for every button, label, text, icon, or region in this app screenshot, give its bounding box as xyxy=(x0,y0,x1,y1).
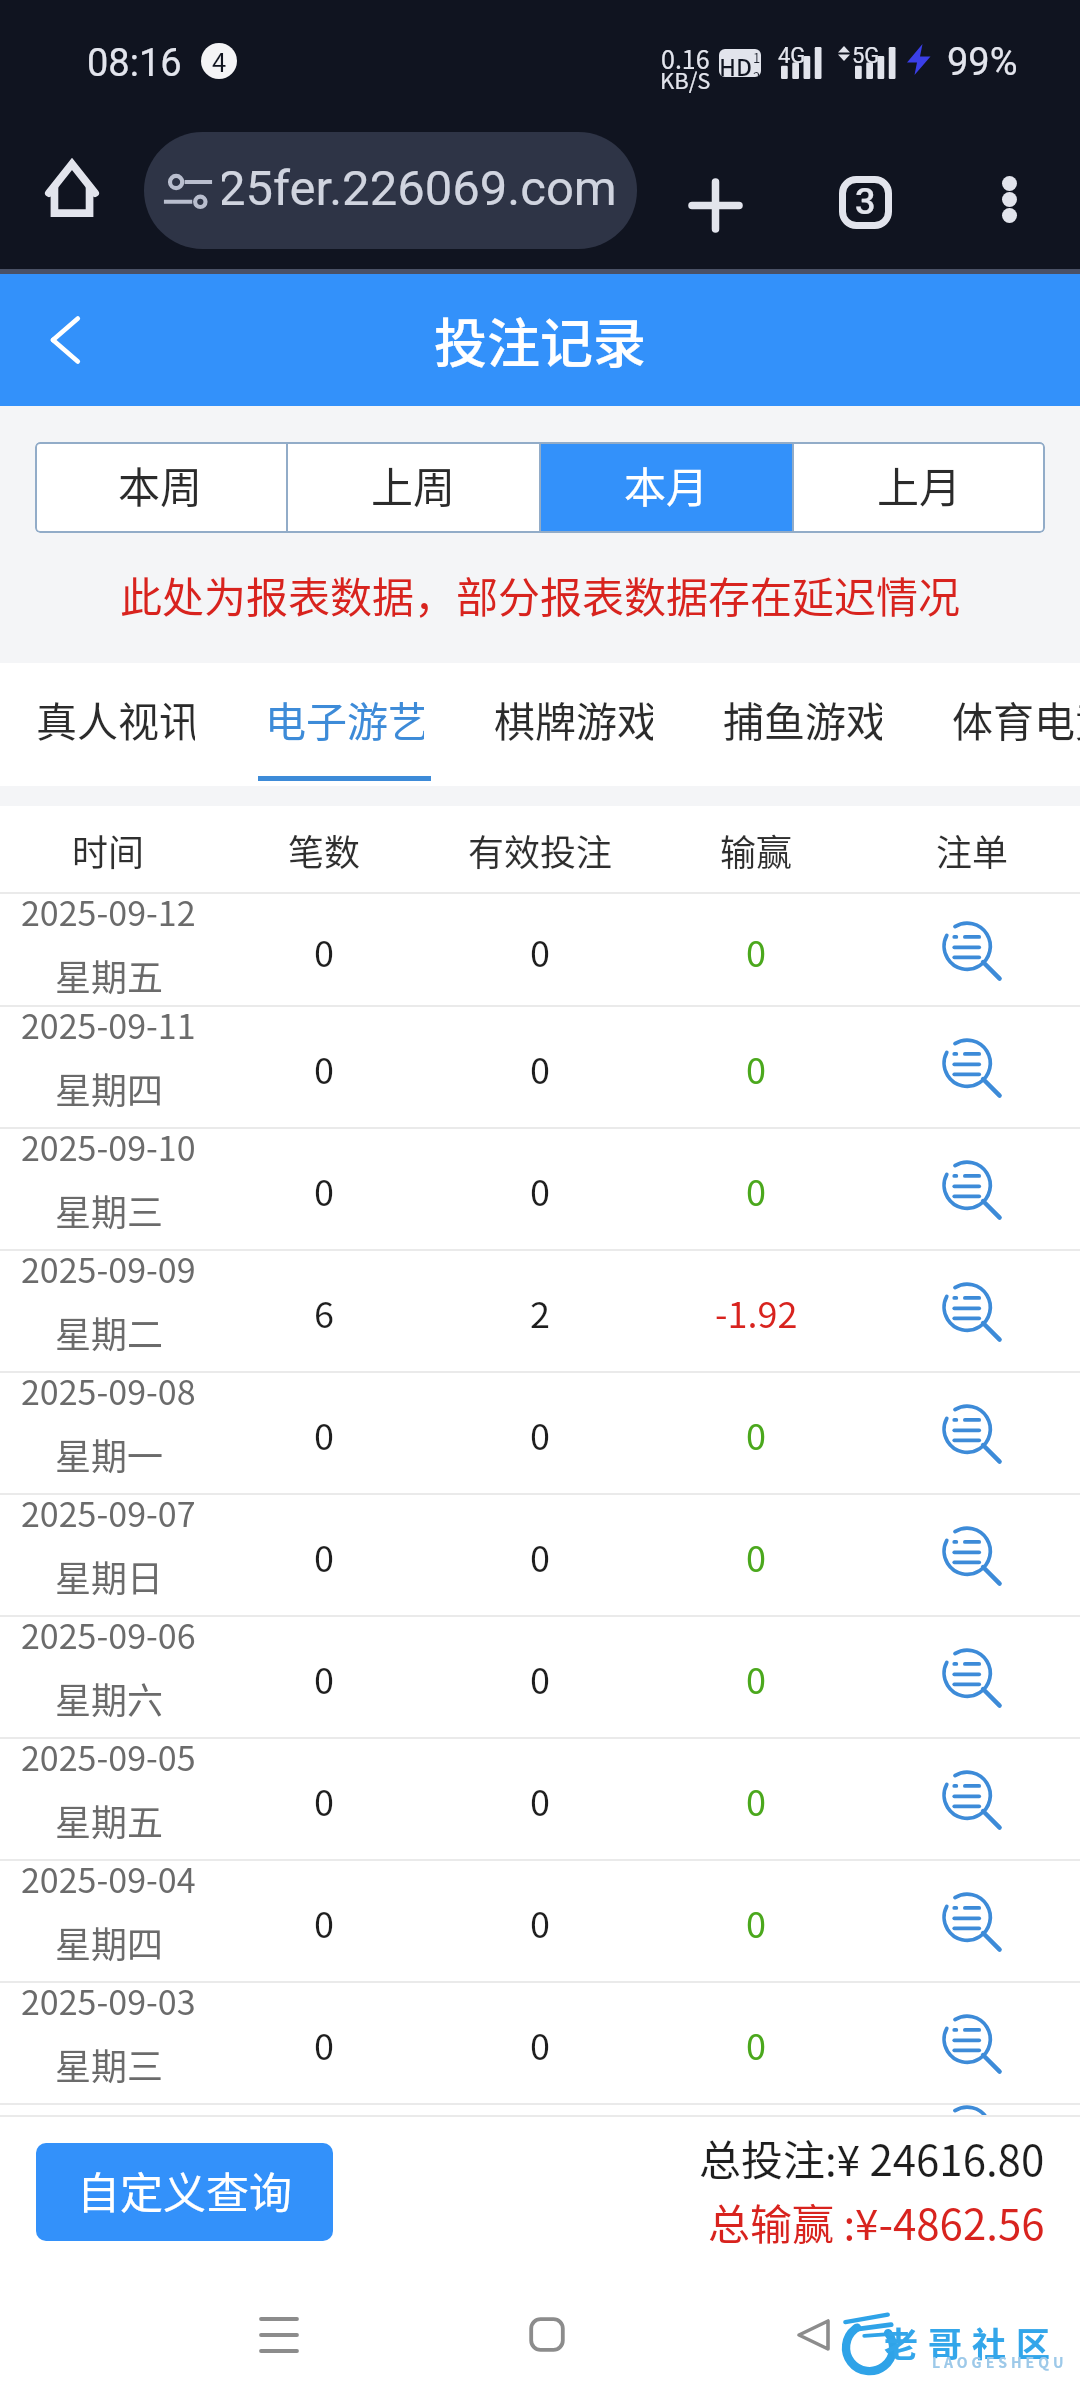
button[interactable]: 真人视讯 xyxy=(36,663,195,786)
staticText: 0 xyxy=(314,1408,334,1460)
button[interactable]: 棋牌游戏 xyxy=(494,663,653,786)
staticText: 0 xyxy=(746,1164,766,1216)
staticText: 0 xyxy=(530,1652,550,1704)
staticText: 0.16 xyxy=(661,40,710,76)
staticText: 上月 xyxy=(877,454,962,515)
staticText: 本月 xyxy=(624,454,709,515)
staticText: 0 xyxy=(530,2105,550,2117)
staticText: 星期二 xyxy=(55,1306,164,1358)
staticText: 投注记录 xyxy=(434,302,646,379)
staticText: 2025-09-10 xyxy=(21,1122,196,1171)
staticText: 注单 xyxy=(936,824,1009,876)
staticText: 星期三 xyxy=(55,1184,164,1236)
staticText: 总输赢 :¥-4862.56 xyxy=(708,2191,1045,2252)
staticText: 输赢 xyxy=(720,824,793,876)
button[interactable]: View bet details xyxy=(922,1140,1022,1240)
staticText: 0 xyxy=(530,1774,550,1826)
staticText: 5G xyxy=(852,43,880,69)
staticText: 0 xyxy=(314,1164,334,1216)
staticText: 0 xyxy=(314,2105,334,2117)
button[interactable]: View bet details xyxy=(922,1018,1022,1118)
staticText: 老哥社区 xyxy=(884,2318,1060,2367)
button[interactable]: Back xyxy=(0,274,134,406)
button[interactable]: View bet details xyxy=(922,1628,1022,1728)
button[interactable]: View bet details xyxy=(922,901,1022,1001)
button[interactable]: New tab xyxy=(667,157,763,253)
staticText: 0 xyxy=(530,925,550,977)
button[interactable]: View bet details xyxy=(922,1750,1022,1850)
staticText: 0 xyxy=(530,1042,550,1094)
button[interactable]: Tabs xyxy=(817,154,913,250)
button[interactable]: 上周 xyxy=(288,442,539,533)
button[interactable]: 自定义查询 xyxy=(36,2143,333,2241)
staticText: 2025-09-02 xyxy=(21,2098,196,2110)
button[interactable]: 上月 xyxy=(794,442,1045,533)
button[interactable]: 25fer.226069.com xyxy=(144,132,637,249)
staticText: 总投注:¥ 24616.80 xyxy=(699,2127,1045,2188)
staticText: 0 xyxy=(314,1530,334,1582)
staticText: 3 xyxy=(855,181,876,223)
staticText: 99% xyxy=(947,40,1018,85)
button[interactable]: Home xyxy=(31,147,113,229)
button[interactable]: View bet details xyxy=(922,1506,1022,1606)
staticText: KB/S xyxy=(660,63,711,95)
staticText: 0 xyxy=(530,1164,550,1216)
button[interactable]: 本月 xyxy=(541,442,792,533)
staticText: 星期六 xyxy=(55,1672,164,1724)
staticText: 0 xyxy=(746,2105,766,2117)
staticText: 星期日 xyxy=(55,1550,164,1602)
staticText: 星期四 xyxy=(55,1916,164,1968)
staticText: 2025-09-04 xyxy=(21,1854,196,1903)
button[interactable]: 电子游艺 xyxy=(265,663,424,786)
staticText: 2 xyxy=(530,1286,550,1338)
button[interactable]: Recent apps xyxy=(199,2275,359,2394)
button[interactable]: Home xyxy=(467,2275,627,2394)
staticText: 0 xyxy=(746,925,766,977)
staticText: 2025-09-11 xyxy=(21,1000,196,1049)
staticText: 2025-09-05 xyxy=(21,1732,196,1781)
staticText: 0 xyxy=(746,1530,766,1582)
staticText: 自定义查询 xyxy=(77,2159,292,2221)
staticText: 此处为报表数据，部分报表数据存在延迟情况 xyxy=(120,564,961,625)
button[interactable]: 体育电竞 xyxy=(952,663,1080,786)
staticText: 0 xyxy=(746,1896,766,1948)
button[interactable]: Back xyxy=(733,2275,893,2394)
staticText: 本周 xyxy=(118,454,203,515)
staticText: 星期三 xyxy=(55,2038,164,2090)
button[interactable]: View bet details xyxy=(922,2105,1022,2117)
staticText: 4 xyxy=(212,43,227,78)
staticText: 08:16 xyxy=(87,41,182,86)
button[interactable]: View bet details xyxy=(922,1262,1022,1362)
staticText: 2025-09-08 xyxy=(21,1366,196,1415)
button[interactable]: 捕鱼游戏 xyxy=(723,663,882,786)
staticText: LAOGESHEQU xyxy=(932,2352,1068,2372)
button[interactable]: More options xyxy=(967,157,1051,241)
staticText: 0 xyxy=(314,1652,334,1704)
staticText: 0 xyxy=(314,925,334,977)
staticText: 0 xyxy=(746,1408,766,1460)
staticText: 0 xyxy=(746,1774,766,1826)
button[interactable]: 本周 xyxy=(35,442,286,533)
staticText: 星期五 xyxy=(55,1794,164,1846)
staticText: 真人视讯 xyxy=(36,689,195,748)
button[interactable]: View bet details xyxy=(922,1872,1022,1972)
staticText: 2 xyxy=(753,67,761,76)
staticText: 0 xyxy=(530,1896,550,1948)
button[interactable]: View bet details xyxy=(922,1384,1022,1484)
staticText: 星期一 xyxy=(55,1428,164,1480)
staticText: 2025-09-07 xyxy=(21,1488,196,1537)
staticText: 时间 xyxy=(72,824,145,876)
staticText: 笔数 xyxy=(288,824,361,876)
staticText: 2025-09-09 xyxy=(21,1244,196,1293)
staticText: 星期四 xyxy=(55,1062,164,1114)
staticText: 0 xyxy=(746,1042,766,1094)
staticText: 0 xyxy=(314,2018,334,2070)
staticText: 体育电竞 xyxy=(952,689,1080,748)
staticText: -1.92 xyxy=(715,1286,798,1338)
staticText: 0 xyxy=(530,1408,550,1460)
staticText: 2025-09-03 xyxy=(21,1976,196,2025)
staticText: 1 xyxy=(753,49,761,67)
staticText: 25fer.226069.com xyxy=(222,162,617,217)
button[interactable]: View bet details xyxy=(922,1994,1022,2094)
staticText: 星期五 xyxy=(55,949,164,1001)
